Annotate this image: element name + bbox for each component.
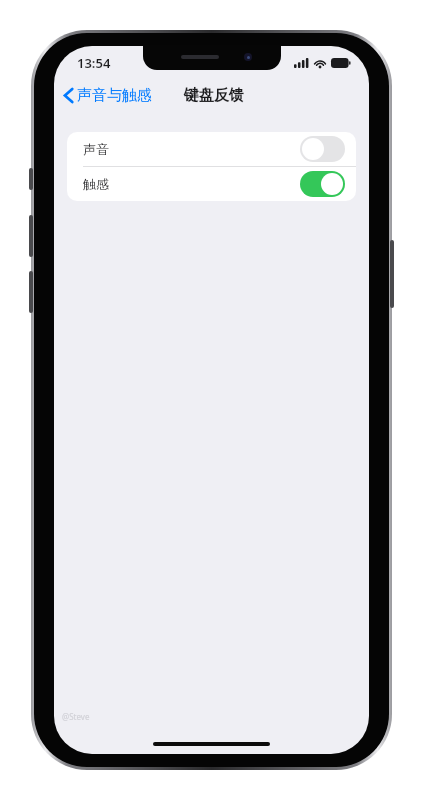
- staticText: 键盘反馈: [184, 86, 244, 105]
- button[interactable]: On: [300, 171, 345, 197]
- staticText: 声音与触感: [77, 86, 152, 105]
- staticText: @Steve: [62, 711, 90, 722]
- button[interactable]: Off: [300, 136, 345, 162]
- staticText: 13:54: [77, 54, 111, 72]
- button[interactable]: 声音: [67, 132, 356, 166]
- staticText: 声音: [83, 141, 109, 157]
- button[interactable]: 触感: [67, 167, 356, 201]
- staticText: 触感: [83, 176, 109, 192]
- button[interactable]: 声音与触感: [59, 82, 157, 109]
